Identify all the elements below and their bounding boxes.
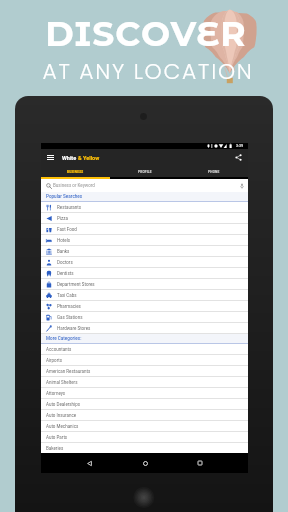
staticText: Auto Mechanics	[46, 424, 79, 429]
staticText: Auto Insurance	[46, 413, 77, 418]
staticText: Gas Stations	[57, 315, 83, 320]
staticText: BUSINESS	[67, 170, 84, 174]
staticText: Banks	[57, 249, 70, 254]
button[interactable]: Fast Food	[41, 224, 248, 234]
staticText: Hotels	[57, 238, 71, 243]
staticText: Animal Shelters	[46, 380, 78, 385]
button[interactable]: Hotels	[41, 235, 248, 245]
staticText: Department Stores	[57, 282, 95, 287]
button[interactable]: Auto Parts	[41, 432, 248, 442]
button[interactable]: Bakeries	[41, 443, 248, 453]
staticText: PHONE	[208, 170, 220, 174]
staticText: American Restaurants	[46, 369, 91, 374]
button[interactable]: Auto Dealerships	[41, 399, 248, 409]
staticText: Fast Food	[57, 227, 77, 232]
staticText: 3:39	[236, 144, 243, 148]
staticText: Business or Keyword	[53, 183, 95, 188]
staticText: Doctors	[57, 260, 73, 265]
button[interactable]: Restaurants	[41, 202, 248, 212]
staticText: Accountants	[46, 347, 72, 352]
button[interactable]: BUSINESS	[41, 166, 110, 177]
staticText: More Categories:	[46, 336, 82, 341]
button[interactable]: Airports	[41, 355, 248, 365]
staticText: PROFILE	[138, 170, 152, 174]
staticText: AT ANY LOCATION	[4, 56, 288, 87]
button[interactable]: Hardware Stores	[41, 323, 248, 333]
staticText: Bakeries	[46, 446, 64, 451]
button[interactable]: Recent apps	[192, 455, 208, 471]
staticText: Hardware Stores	[57, 326, 91, 331]
button[interactable]: Animal Shelters	[41, 377, 248, 387]
button[interactable]: Open navigation menu	[45, 152, 56, 163]
button[interactable]: Accountants	[41, 344, 248, 354]
button[interactable]: Gas Stations	[41, 312, 248, 322]
button[interactable]: PHONE	[179, 166, 248, 177]
staticText: Dentists	[57, 271, 74, 276]
button[interactable]: Department Stores	[41, 279, 248, 289]
button[interactable]: Pharmacies	[41, 301, 248, 311]
button[interactable]: Doctors	[41, 257, 248, 267]
button[interactable]: Dentists	[41, 268, 248, 278]
staticText: Pharmacies	[57, 304, 81, 309]
staticText: Popular Searches	[46, 194, 83, 199]
staticText: Pizza	[57, 216, 68, 221]
button[interactable]: American Restaurants	[41, 366, 248, 376]
button[interactable]: Home	[137, 455, 153, 471]
staticText: Attorneys	[46, 391, 66, 396]
staticText: White	[62, 155, 78, 161]
staticText: Auto Dealerships	[46, 402, 81, 407]
button[interactable]: PROFILE	[110, 166, 179, 177]
staticText: Taxi Cabs	[57, 293, 77, 298]
button[interactable]: Pizza	[41, 213, 248, 223]
staticText: Auto Parts	[46, 435, 68, 440]
staticText: Airports	[46, 358, 63, 363]
button[interactable]: Share	[232, 151, 245, 164]
button[interactable]: Taxi Cabs	[41, 290, 248, 300]
staticText: & Yellow	[78, 155, 100, 161]
button[interactable]: Auto Insurance	[41, 410, 248, 420]
button[interactable]: Attorneys	[41, 388, 248, 398]
button[interactable]: Banks	[41, 246, 248, 256]
button[interactable]: Auto Mechanics	[41, 421, 248, 431]
button[interactable]: Back	[81, 455, 97, 471]
staticText: Restaurants	[57, 205, 82, 210]
staticText: DISCOVER	[2, 13, 288, 55]
